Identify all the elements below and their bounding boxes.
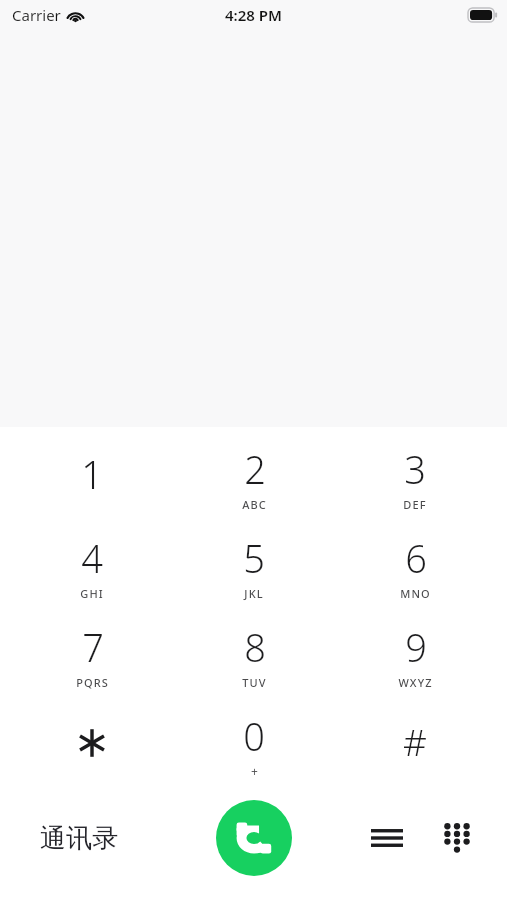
button[interactable]: 8 <box>184 613 324 702</box>
staticText: 通讯录 <box>40 822 118 855</box>
staticText: # <box>403 716 427 766</box>
staticText: + <box>251 763 258 779</box>
button[interactable]: 9 <box>345 613 485 702</box>
staticText: 1 <box>81 448 103 500</box>
staticText: MNO <box>400 586 431 601</box>
staticText: 9 <box>405 621 427 673</box>
staticText: 4:28 PM <box>225 5 282 25</box>
button[interactable]: 2 <box>184 435 324 524</box>
staticText: 0 <box>243 710 265 762</box>
button[interactable]: 7 <box>22 613 162 702</box>
staticText: 4 <box>81 532 103 584</box>
button[interactable]: 0 <box>184 702 324 791</box>
staticText: 5 <box>243 532 265 584</box>
button[interactable]: 通讯录 <box>34 816 124 861</box>
staticText: 7 <box>82 621 104 673</box>
button[interactable]: 4 <box>22 524 162 613</box>
staticText: 8 <box>244 621 266 673</box>
button[interactable]: 6 <box>345 524 485 613</box>
staticText: JKL <box>244 586 264 601</box>
button[interactable] <box>22 702 162 791</box>
button[interactable]: 3 <box>345 435 485 524</box>
button[interactable]: Menu <box>365 816 409 860</box>
staticText: GHI <box>80 586 104 601</box>
staticText: 2 <box>244 443 266 495</box>
button[interactable]: # <box>345 702 485 791</box>
button[interactable]: 1 <box>22 435 162 524</box>
button[interactable]: 5 <box>184 524 324 613</box>
button[interactable]: Keypad <box>435 816 479 860</box>
staticText: 6 <box>405 532 427 584</box>
staticText: ABC <box>242 497 267 512</box>
staticText: DEF <box>403 497 427 512</box>
staticText: TUV <box>242 675 267 690</box>
staticText: Carrier <box>12 5 61 25</box>
staticText: PQRS <box>76 675 109 690</box>
button[interactable]: Call <box>216 800 292 876</box>
staticText: 3 <box>404 443 426 495</box>
staticText: WXYZ <box>398 675 433 690</box>
